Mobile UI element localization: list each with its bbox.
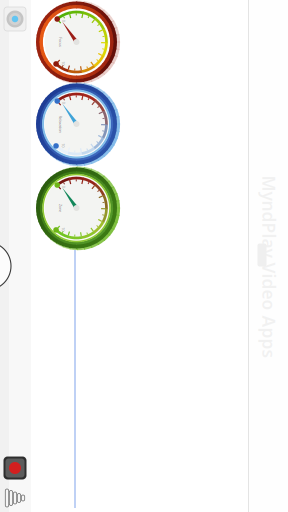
staticText: Relaxation — [3, 337, 20, 342]
button[interactable]: MyndPlay Video Apps — [63, 119, 246, 142]
staticText: MyndPlay Video Apps — [63, 119, 246, 142]
